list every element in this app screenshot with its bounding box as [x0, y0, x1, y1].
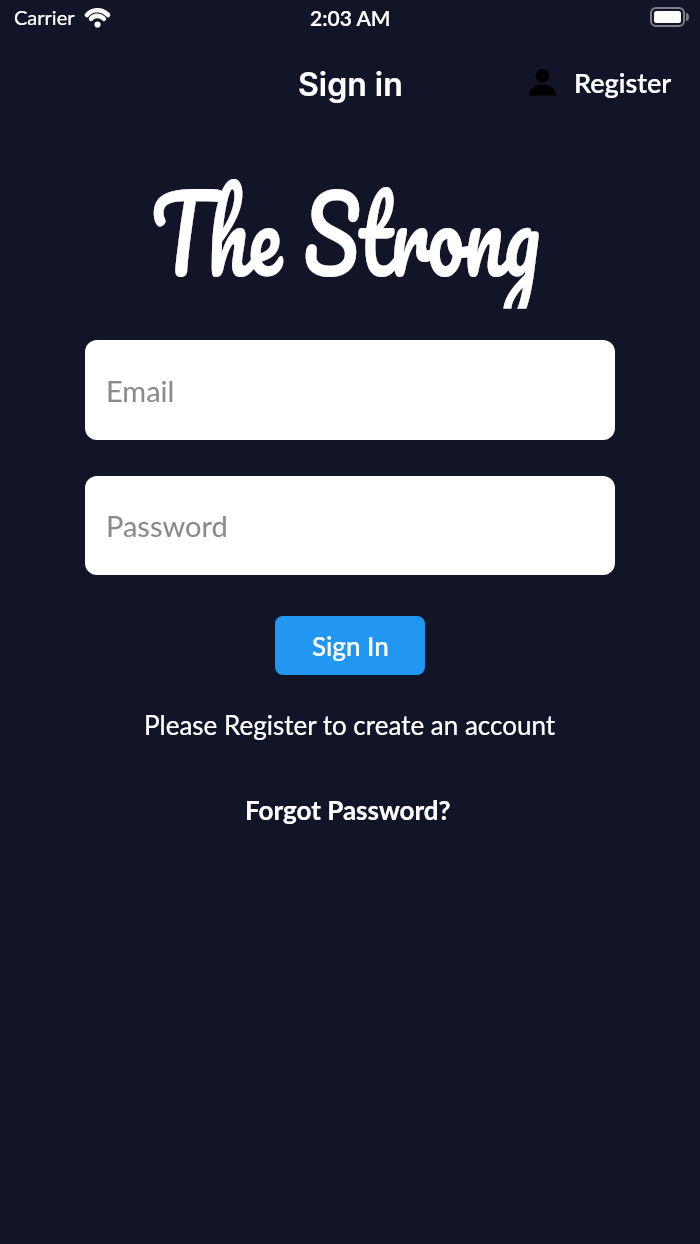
- button[interactable]: Sign In: [275, 616, 425, 675]
- button[interactable]: Email: [85, 340, 615, 440]
- staticText: Please Register to create an account: [144, 709, 556, 740]
- staticText: Sign In: [312, 630, 389, 661]
- staticText: Email: [106, 373, 175, 408]
- staticText: Forgot Password?: [245, 794, 451, 825]
- staticText: Password: [106, 508, 228, 543]
- staticText: Sign in: [298, 65, 403, 104]
- staticText: The Strong: [151, 141, 540, 309]
- button[interactable]: Forgot Password?: [247, 794, 453, 825]
- staticText: Register: [574, 66, 672, 98]
- button[interactable]: Password: [85, 476, 615, 575]
- staticText: 2:03 AM: [310, 5, 391, 30]
- button[interactable]: Register: [529, 66, 672, 98]
- staticText: Carrier: [14, 5, 75, 29]
